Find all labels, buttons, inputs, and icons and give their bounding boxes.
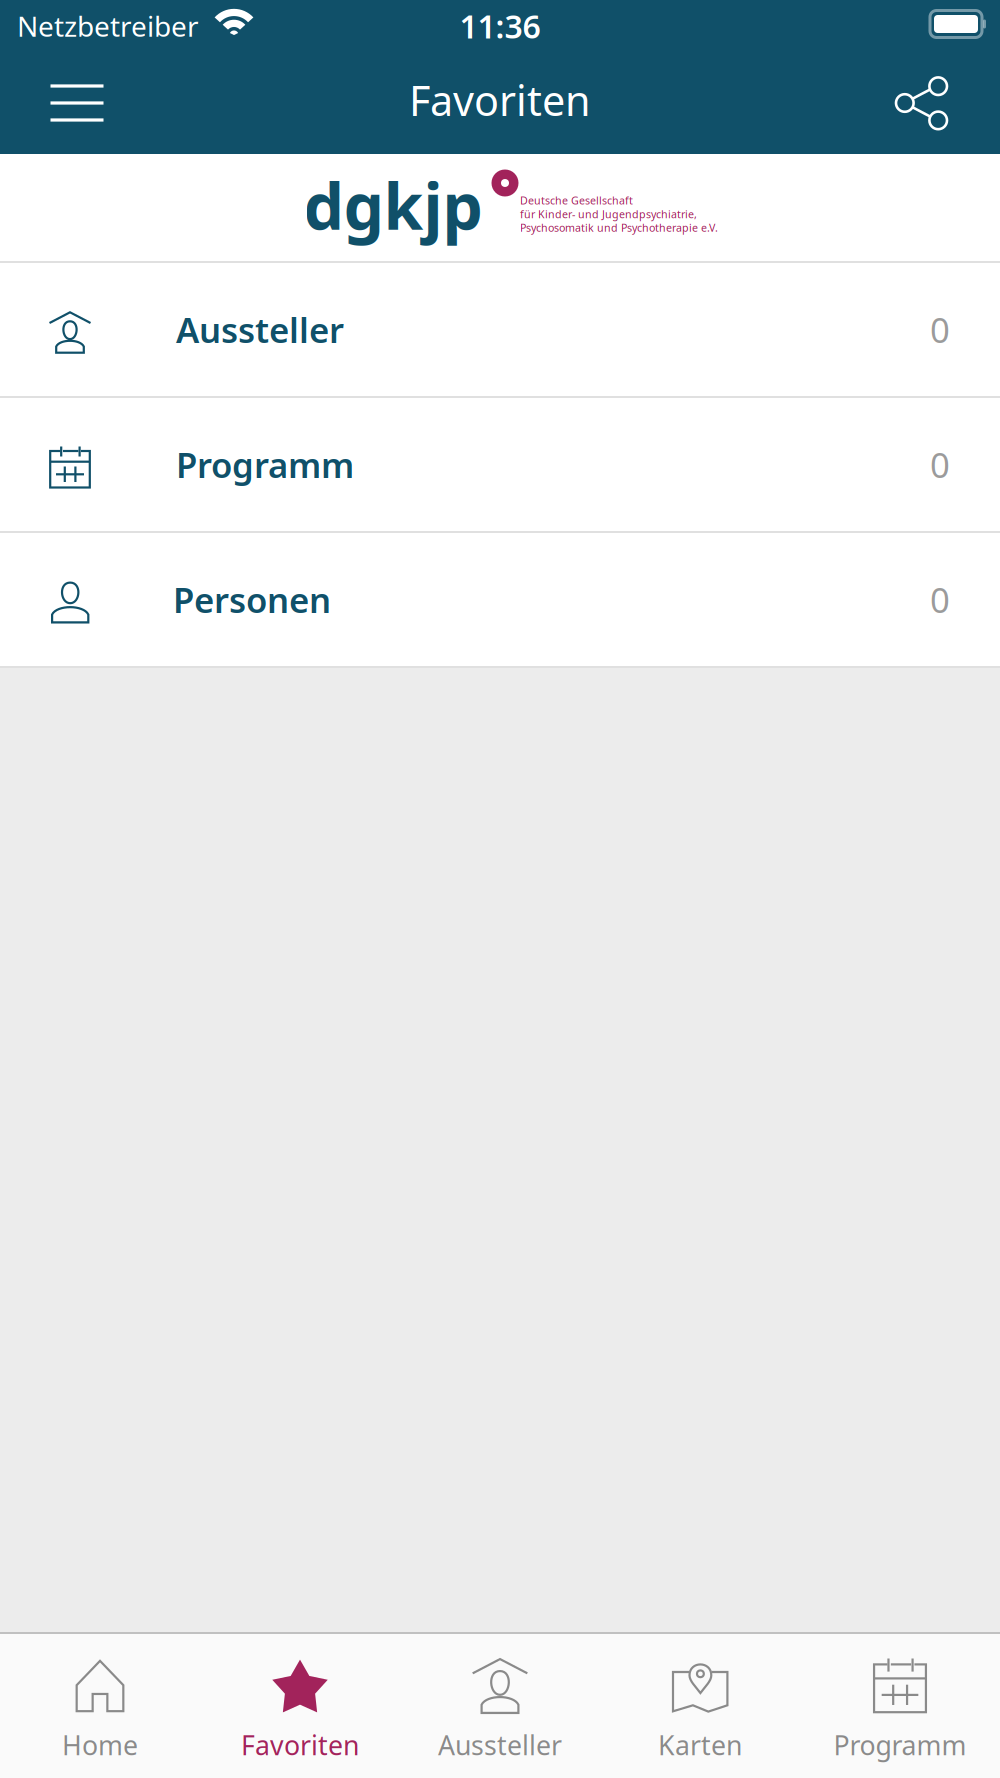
staticText: Netzbetreiber (17, 7, 199, 45)
button[interactable]: Menu (0, 52, 139, 153)
staticText: 0 (930, 441, 950, 487)
button[interactable]: Programm (800, 1634, 1000, 1778)
staticText: Favoriten (409, 73, 591, 127)
staticText: Programm (176, 441, 354, 487)
staticText: 0 (930, 576, 950, 622)
staticText: Programm (833, 1727, 966, 1763)
button[interactable]: Karten (600, 1634, 800, 1778)
staticText: Karten (658, 1727, 742, 1763)
button[interactable]: Personen (0, 533, 1000, 666)
button[interactable]: Aussteller (400, 1634, 600, 1778)
button[interactable]: Share (861, 52, 1000, 154)
staticText: für Kinder- und Jugendpsychiatrie, (520, 207, 697, 221)
button[interactable]: Programm (0, 398, 1000, 531)
staticText: Favoriten (241, 1727, 359, 1763)
staticText: Home (62, 1727, 138, 1763)
staticText: 0 (930, 306, 950, 352)
staticText: Personen (173, 576, 331, 622)
staticText: Deutsche Gesellschaft (520, 193, 633, 207)
staticText: 11:36 (459, 5, 540, 47)
staticText: Aussteller (438, 1727, 562, 1763)
button[interactable]: Aussteller (0, 263, 1000, 396)
staticText: Aussteller (176, 306, 344, 352)
staticText: Psychosomatik und Psychotherapie e.V. (520, 221, 718, 235)
staticText: dgkjp (303, 162, 482, 247)
button[interactable]: Favoriten (200, 1634, 400, 1778)
button[interactable]: Home (0, 1634, 200, 1778)
